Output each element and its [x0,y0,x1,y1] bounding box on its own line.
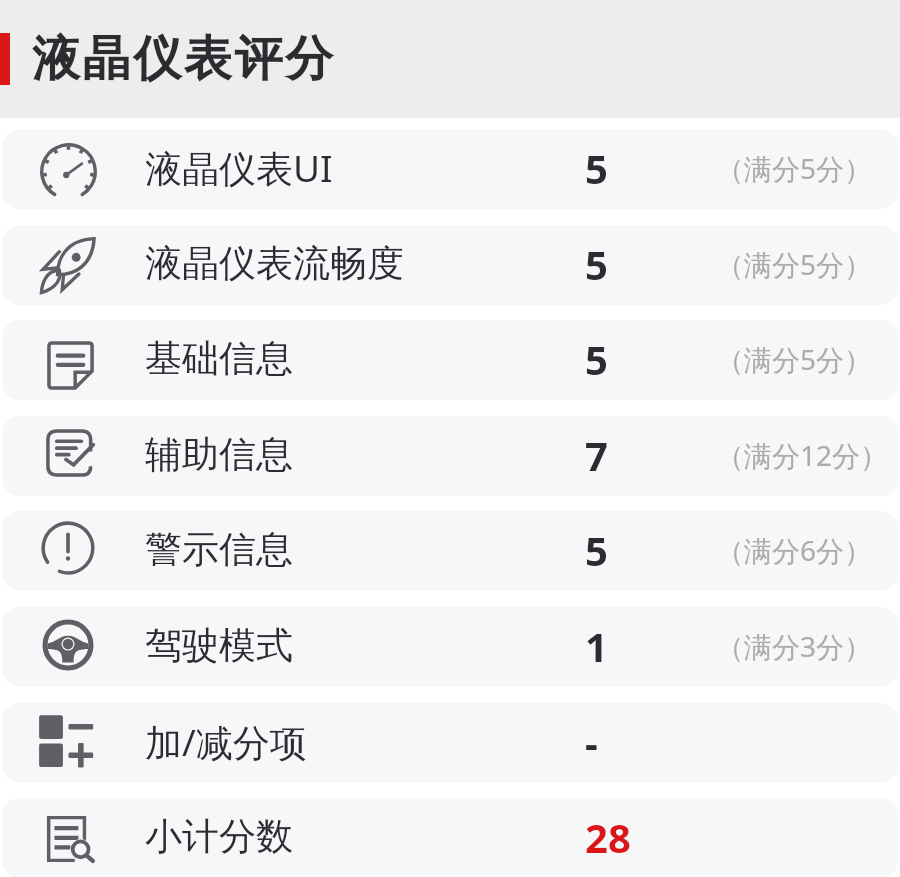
button[interactable]: 辅助信息 [2,416,898,496]
button[interactable]: 警示信息 [2,511,898,591]
staticText: 液晶仪表评分 [32,29,336,89]
staticText: （满分5分） [716,149,873,187]
staticText: 5 [585,141,608,195]
button[interactable]: 小计分数 [2,798,898,877]
staticText: （满分5分） [716,340,873,378]
staticText: （满分12分） [716,436,889,474]
button[interactable]: 液晶仪表流畅度 [2,225,898,305]
staticText: （满分5分） [716,245,873,283]
staticText: 7 [585,428,608,482]
staticText: 警示信息 [145,526,293,573]
staticText: （满分6分） [716,531,873,569]
button[interactable]: 液晶仪表UI [2,129,898,209]
staticText: 液晶仪表流畅度 [145,240,404,287]
staticText: （满分3分） [716,627,873,665]
staticText: 辅助信息 [145,431,293,478]
staticText: 液晶仪表UI [145,142,333,193]
staticText: 5 [585,237,608,291]
staticText: 5 [585,523,608,577]
staticText: 5 [585,332,608,386]
staticText: 加/减分项 [145,716,307,767]
staticText: 28 [585,810,631,864]
staticText: 1 [585,619,608,673]
staticText: 驾驶模式 [145,622,293,669]
button[interactable]: 加/减分项 [2,703,898,783]
button[interactable]: 驾驶模式 [2,607,898,687]
staticText: 小计分数 [145,813,293,860]
staticText: 基础信息 [145,335,293,382]
staticText: - [585,715,598,769]
button[interactable]: 基础信息 [2,320,898,400]
